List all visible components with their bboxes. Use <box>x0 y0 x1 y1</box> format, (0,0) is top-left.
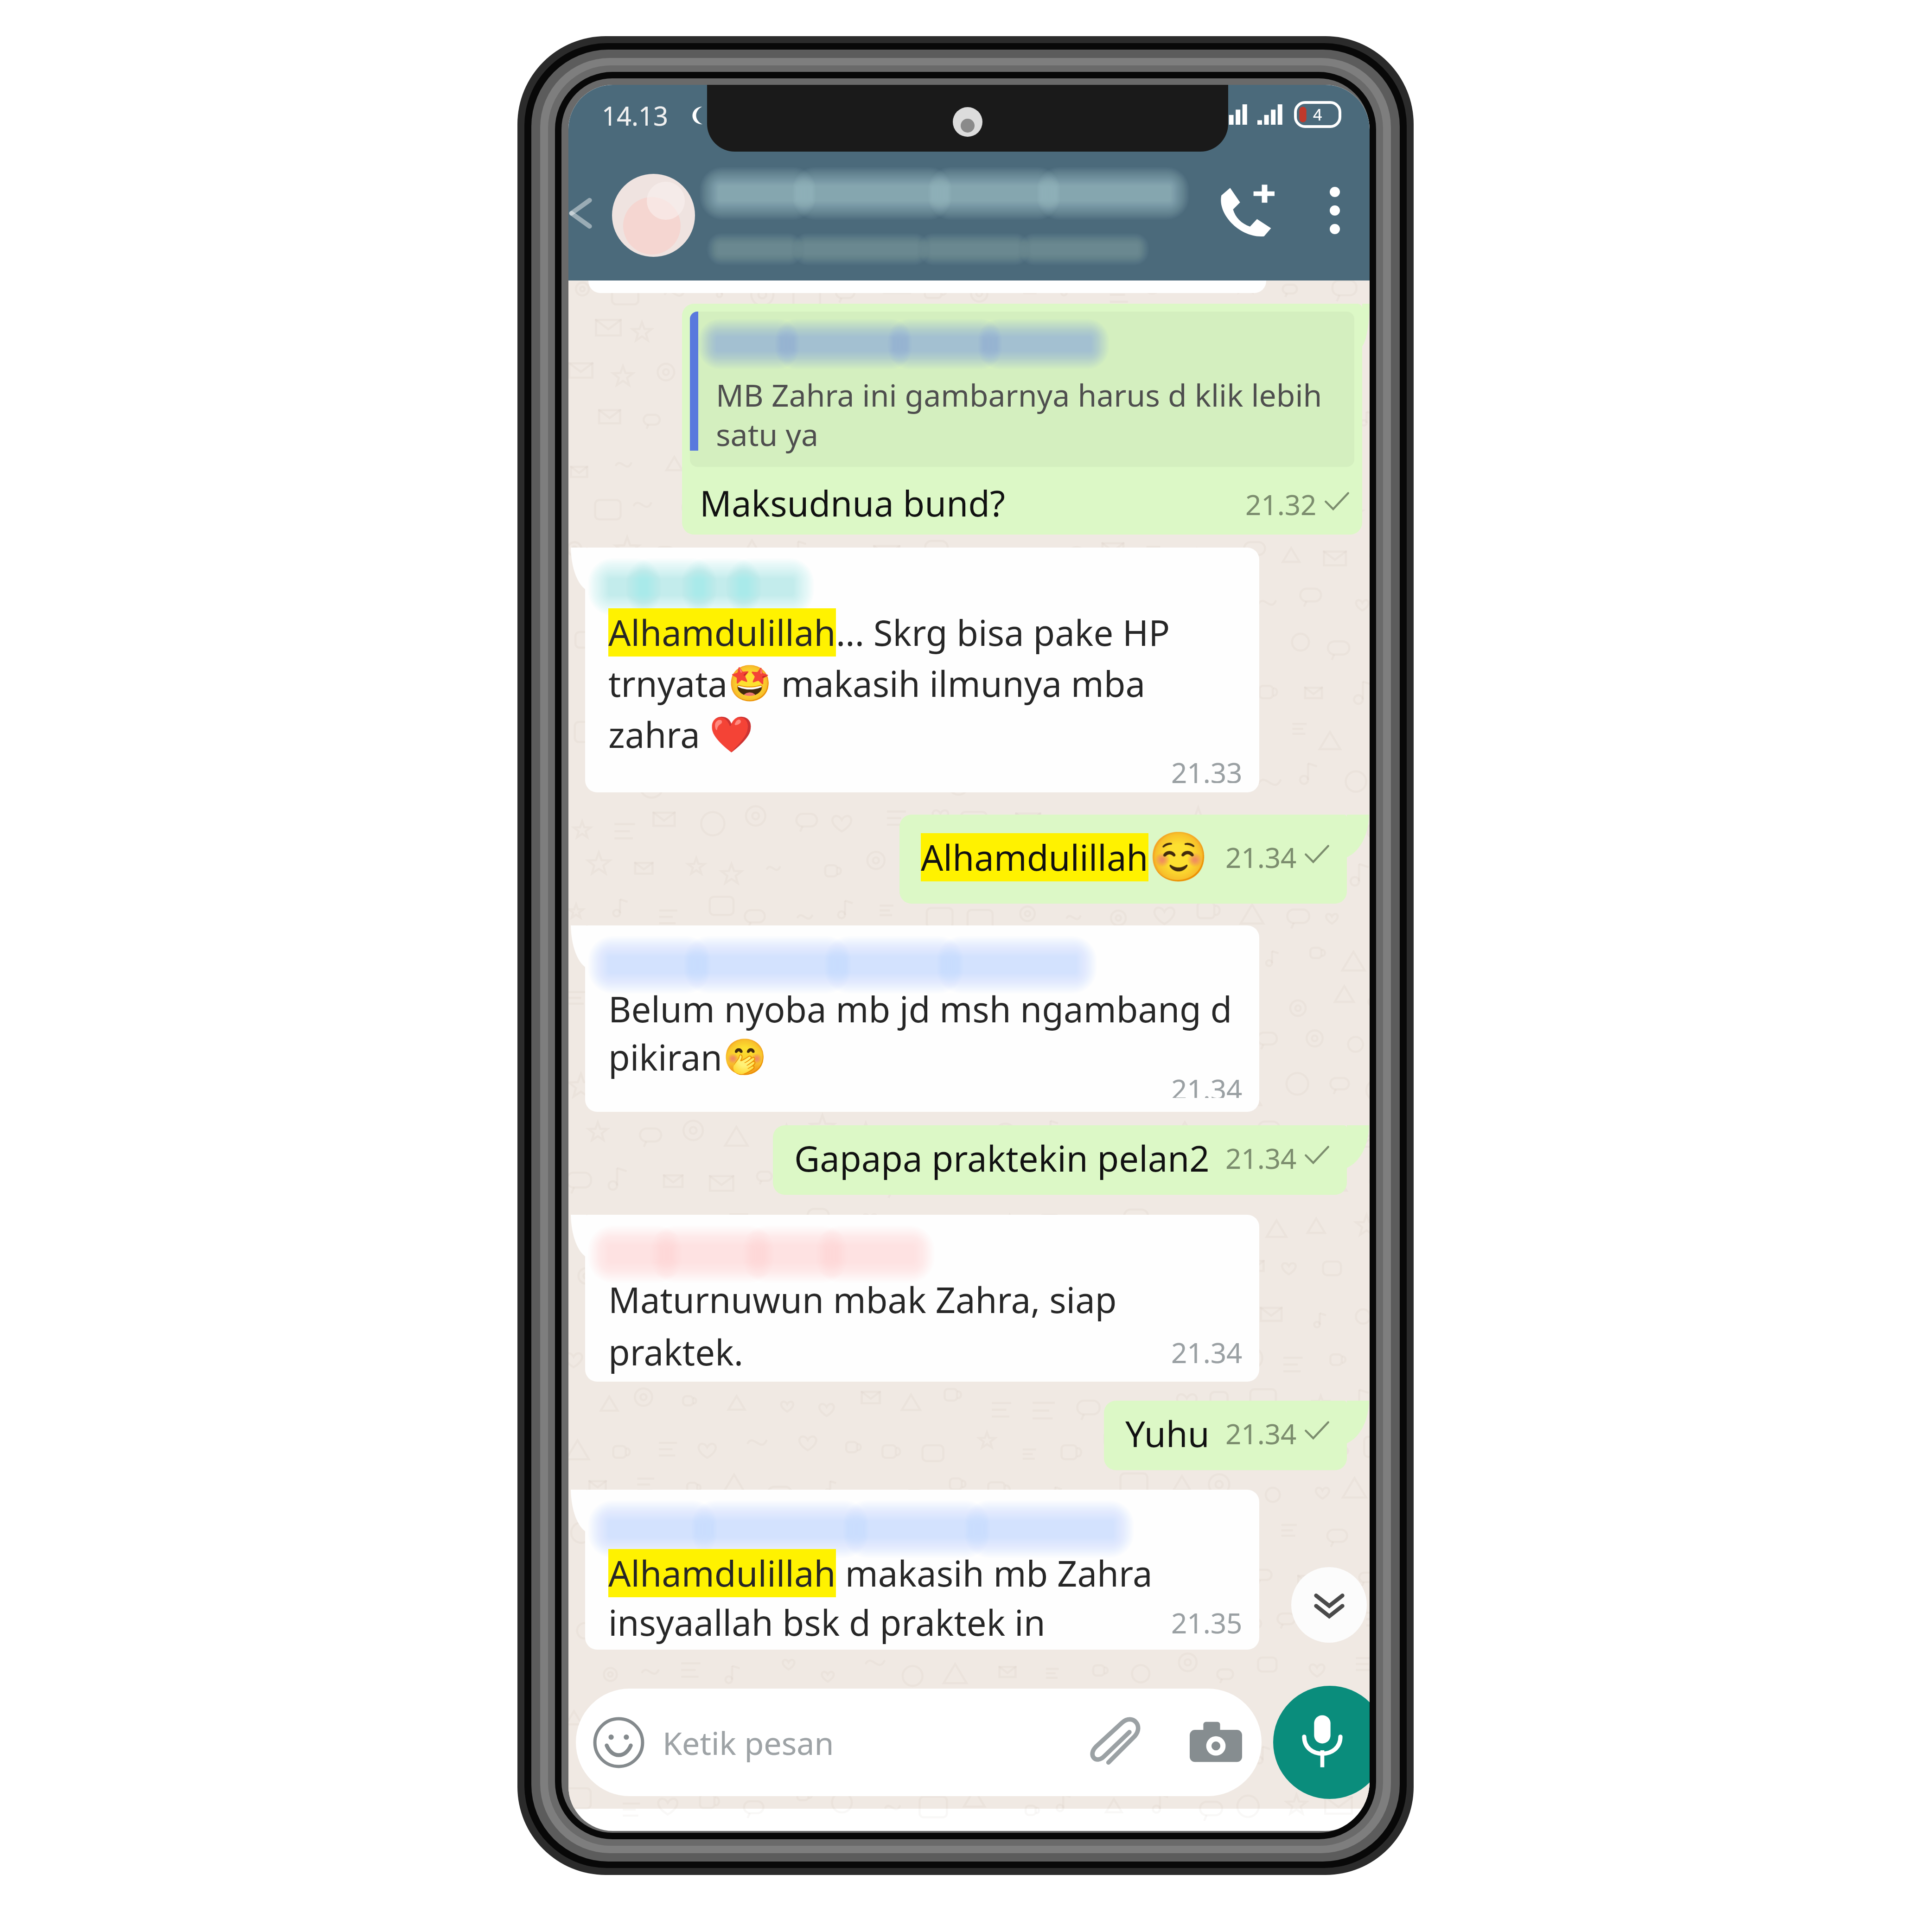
button[interactable]: Belum nyoba mb jd msh ngambang d <box>585 925 1259 1112</box>
staticText: 🤭 <box>723 1037 767 1078</box>
staticText: Yuhu <box>1125 1409 1210 1458</box>
staticText: 21.35 <box>1171 1604 1243 1642</box>
staticText: ❤️ <box>709 714 753 755</box>
button[interactable]: Gapapa praktekin pelan2 <box>773 1125 1347 1195</box>
staticText: 21.34 <box>1225 1139 1297 1177</box>
staticText: 4 <box>1313 104 1322 125</box>
staticText: Gapapa praktekin pelan2 <box>794 1134 1210 1182</box>
button[interactable]: Ketik pesan <box>576 1689 1262 1796</box>
button[interactable]: Alhamdulillah <box>585 1490 1259 1650</box>
staticText: 21.34 <box>1225 1415 1297 1453</box>
button[interactable]: Yuhu <box>1104 1401 1347 1470</box>
button[interactable]: Alhamdulillah <box>585 548 1259 792</box>
staticText: Maturnuwun mbak Zahra, siap <box>608 1275 1117 1324</box>
button[interactable]: Back <box>568 183 606 243</box>
button[interactable]: Record voice message <box>1273 1686 1370 1799</box>
staticText: Alhamdulillah <box>608 608 836 657</box>
button[interactable]: Scroll to bottom <box>1291 1567 1367 1643</box>
button[interactable]: MB Zahra ini gambarnya harus d klik lebi… <box>682 304 1362 535</box>
staticText: 21.32 <box>1245 485 1317 523</box>
staticText: Belum nyoba mb jd msh ngambang d <box>608 985 1232 1033</box>
staticText: ☺️ <box>1148 829 1209 886</box>
staticText: 21.33 <box>1171 753 1243 783</box>
staticText: makasih mb Zahra <box>836 1549 1153 1597</box>
staticText: 21.34 <box>1171 1070 1243 1098</box>
staticText: praktek. <box>608 1328 744 1376</box>
button[interactable]: Maturnuwun mbak Zahra, siap <box>585 1215 1259 1382</box>
staticText: MB Zahra ini gambarnya harus d klik lebi… <box>716 374 1322 455</box>
button[interactable]: More options <box>1309 173 1361 248</box>
staticText: 21.34 <box>1171 1333 1243 1371</box>
staticText: ... Skrg bisa pake HP <box>836 608 1170 657</box>
staticText: 🤩 <box>728 663 772 704</box>
staticText: 21.34 <box>1225 838 1297 876</box>
staticText: makasih ilmunya mba <box>772 659 1146 708</box>
staticText: pikiran <box>608 1033 723 1081</box>
button[interactable]: Video call <box>1207 171 1288 250</box>
staticText: trnyata <box>608 659 728 708</box>
staticText: insyaallah bsk d praktek in <box>608 1598 1046 1646</box>
staticText: Alhamdulillah <box>608 1549 836 1597</box>
button[interactable] <box>612 154 1205 276</box>
staticText: Alhamdulillah <box>921 833 1148 881</box>
staticText: Ketik pesan <box>663 1721 834 1764</box>
staticText: 14.13 <box>602 98 669 133</box>
staticText: zahra <box>608 710 709 759</box>
button[interactable]: Alhamdulillah <box>899 815 1347 904</box>
staticText: Maksudnua bund? <box>700 479 1005 527</box>
